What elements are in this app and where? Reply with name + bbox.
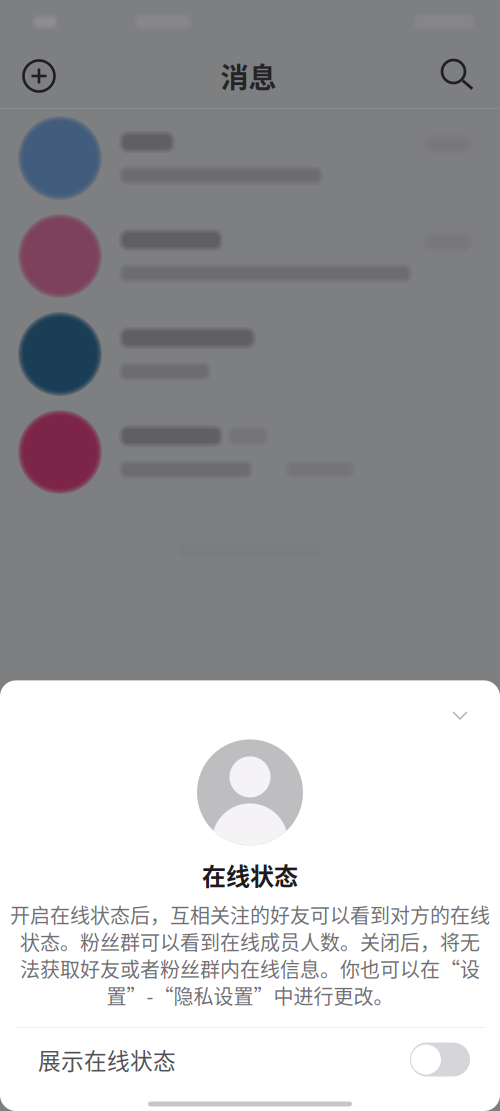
- button[interactable]: Search: [434, 52, 482, 100]
- staticText: 消息: [220, 56, 276, 96]
- button[interactable]: Close: [441, 696, 479, 734]
- button[interactable]: New message: [15, 52, 63, 100]
- staticText: 开启在线状态后，互相关注的好友可以看到对方的在线: [10, 900, 490, 929]
- staticText: 法获取好友或者粉丝群内在线信息。你也可以在“设: [20, 954, 480, 983]
- staticText: 展示在线状态: [38, 1043, 176, 1076]
- staticText: 置”-“隐私设置”中进行更改。: [106, 981, 393, 1010]
- button[interactable]: 展示在线状态: [0, 1028, 500, 1091]
- staticText: 状态。粉丝群可以看到在线成员人数。关闭后，将无: [20, 927, 480, 956]
- staticText: 在线状态: [202, 857, 298, 892]
